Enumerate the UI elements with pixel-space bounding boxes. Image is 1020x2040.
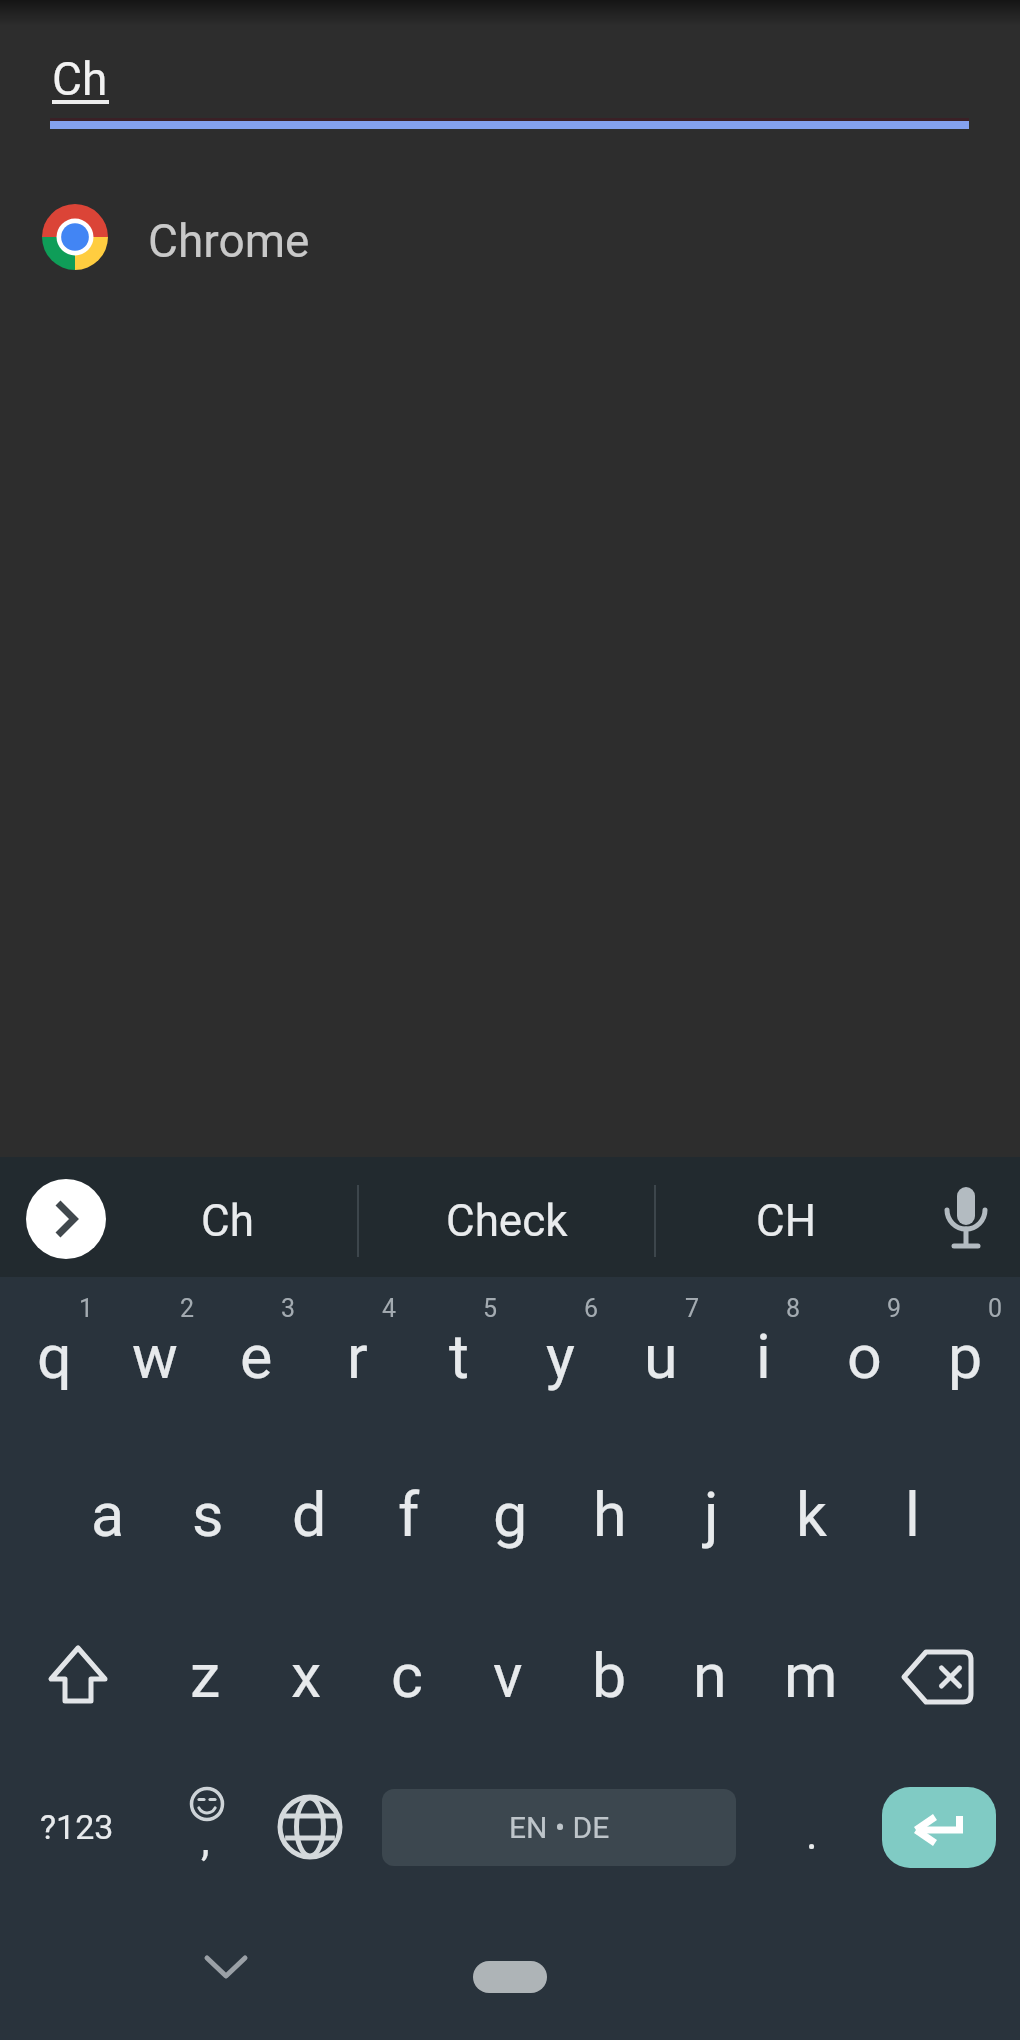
staticText: Chrome bbox=[148, 214, 310, 268]
staticText: 0 bbox=[988, 1294, 1003, 1323]
staticText: b bbox=[592, 1640, 627, 1711]
button[interactable] bbox=[0, 1591, 154, 1748]
staticText: z bbox=[190, 1640, 221, 1711]
button[interactable] bbox=[186, 1930, 266, 2010]
staticText: d bbox=[292, 1479, 327, 1550]
button[interactable] bbox=[760, 1434, 862, 1591]
staticText: . bbox=[806, 1808, 818, 1860]
staticText: y bbox=[546, 1321, 575, 1392]
staticText: Check bbox=[446, 1195, 568, 1247]
button[interactable] bbox=[813, 1277, 915, 1434]
button[interactable] bbox=[26, 1179, 106, 1259]
button[interactable] bbox=[258, 1434, 360, 1591]
staticText: e bbox=[240, 1321, 273, 1392]
button[interactable] bbox=[509, 1277, 611, 1434]
staticText: Ch bbox=[52, 52, 108, 106]
staticText: s bbox=[192, 1479, 224, 1550]
button[interactable] bbox=[558, 1591, 660, 1748]
button[interactable] bbox=[255, 1591, 357, 1748]
staticText: 5 bbox=[483, 1294, 498, 1323]
staticText: f bbox=[398, 1479, 420, 1550]
staticText: c bbox=[391, 1640, 423, 1711]
staticText: v bbox=[493, 1640, 523, 1711]
staticText: , bbox=[201, 1814, 210, 1866]
staticText: m bbox=[784, 1640, 838, 1711]
staticText: q bbox=[37, 1321, 72, 1392]
staticText: n bbox=[693, 1640, 727, 1711]
staticText: 2 bbox=[180, 1294, 195, 1323]
staticText: o bbox=[847, 1321, 882, 1392]
staticText: Ch bbox=[201, 1195, 254, 1247]
staticText: t bbox=[449, 1321, 469, 1392]
staticText: CH bbox=[756, 1195, 817, 1247]
staticText: w bbox=[132, 1321, 178, 1392]
button[interactable] bbox=[610, 1277, 712, 1434]
button[interactable]: Ch bbox=[50, 52, 970, 132]
button[interactable] bbox=[256, 1748, 360, 1905]
staticText: i bbox=[756, 1321, 771, 1392]
staticText: 4 bbox=[382, 1294, 397, 1323]
button[interactable]: . bbox=[782, 1789, 842, 1879]
staticText: x bbox=[291, 1640, 322, 1711]
button[interactable]: ?123 bbox=[0, 1748, 154, 1905]
staticText: l bbox=[905, 1479, 920, 1550]
staticText: 6 bbox=[584, 1294, 599, 1323]
staticText: g bbox=[493, 1479, 528, 1550]
button[interactable] bbox=[559, 1434, 661, 1591]
button[interactable] bbox=[660, 1434, 762, 1591]
staticText: u bbox=[644, 1321, 678, 1392]
button[interactable] bbox=[157, 1434, 259, 1591]
button[interactable] bbox=[866, 1591, 1020, 1748]
staticText: EN • DE bbox=[509, 1810, 610, 1845]
button[interactable] bbox=[408, 1277, 510, 1434]
button[interactable]: , bbox=[154, 1748, 258, 1905]
staticText: 9 bbox=[887, 1294, 902, 1323]
button[interactable] bbox=[882, 1787, 996, 1868]
staticText: j bbox=[704, 1479, 719, 1550]
button[interactable] bbox=[914, 1277, 1016, 1434]
staticText: 8 bbox=[786, 1294, 801, 1323]
button[interactable]: EN • DE bbox=[382, 1789, 736, 1866]
staticText: k bbox=[796, 1479, 827, 1550]
button[interactable] bbox=[712, 1277, 814, 1434]
button[interactable] bbox=[57, 1434, 159, 1591]
staticText: h bbox=[593, 1479, 627, 1550]
button[interactable] bbox=[104, 1277, 206, 1434]
staticText: ?123 bbox=[40, 1807, 114, 1847]
button[interactable]: Check bbox=[367, 1166, 647, 1276]
button[interactable] bbox=[473, 1961, 547, 1993]
button[interactable] bbox=[356, 1591, 458, 1748]
button[interactable]: CH bbox=[666, 1166, 906, 1276]
button[interactable] bbox=[457, 1591, 559, 1748]
button[interactable] bbox=[861, 1434, 963, 1591]
button[interactable]: Ch bbox=[107, 1166, 347, 1276]
button[interactable] bbox=[3, 1277, 105, 1434]
button[interactable] bbox=[459, 1434, 561, 1591]
staticText: 3 bbox=[281, 1294, 296, 1323]
staticText: 7 bbox=[685, 1294, 700, 1323]
staticText: p bbox=[948, 1321, 983, 1392]
button[interactable] bbox=[358, 1434, 460, 1591]
staticText: r bbox=[347, 1321, 368, 1392]
button[interactable] bbox=[659, 1591, 761, 1748]
staticText: 1 bbox=[79, 1294, 94, 1323]
button[interactable] bbox=[760, 1591, 862, 1748]
button[interactable]: Chrome bbox=[20, 190, 520, 285]
button[interactable] bbox=[306, 1277, 408, 1434]
button[interactable] bbox=[926, 1180, 1006, 1260]
staticText: a bbox=[91, 1479, 125, 1550]
button[interactable] bbox=[205, 1277, 307, 1434]
button[interactable] bbox=[154, 1591, 256, 1748]
